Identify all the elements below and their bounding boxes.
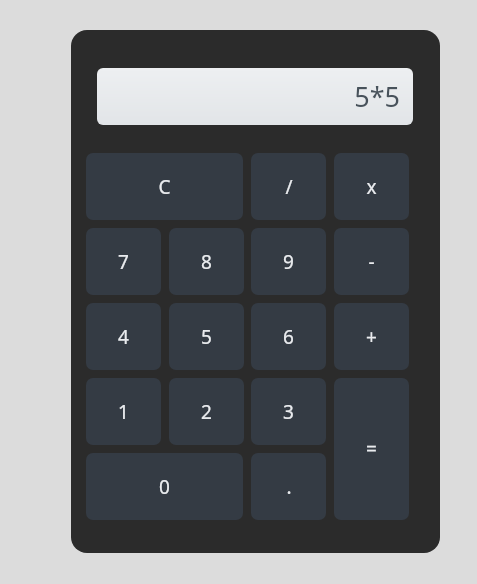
button[interactable]: 0 <box>86 453 243 520</box>
staticText: = <box>366 436 377 462</box>
staticText: / <box>285 174 293 200</box>
staticText: - <box>368 249 375 275</box>
staticText: 5*5 <box>354 78 400 115</box>
staticText: 2 <box>201 399 212 425</box>
button[interactable]: C <box>86 153 243 220</box>
staticText: x <box>366 174 377 200</box>
button[interactable]: + <box>334 303 409 370</box>
staticText: C <box>158 174 171 200</box>
button[interactable]: 6 <box>251 303 326 370</box>
staticText: 5 <box>201 324 212 350</box>
staticText: 0 <box>159 474 170 500</box>
button[interactable]: - <box>334 228 409 295</box>
staticText: 6 <box>283 324 294 350</box>
button[interactable]: 9 <box>251 228 326 295</box>
button[interactable]: 8 <box>169 228 244 295</box>
button[interactable]: Display <box>97 68 413 125</box>
button[interactable]: / <box>251 153 326 220</box>
button[interactable]: x <box>334 153 409 220</box>
button[interactable]: 1 <box>86 378 161 445</box>
button[interactable]: 2 <box>169 378 244 445</box>
staticText: 7 <box>118 249 129 275</box>
button[interactable]: 7 <box>86 228 161 295</box>
staticText: 4 <box>118 324 129 350</box>
staticText: . <box>286 474 292 500</box>
staticText: 9 <box>283 249 294 275</box>
button[interactable]: . <box>251 453 326 520</box>
button[interactable]: = <box>334 378 409 520</box>
staticText: 8 <box>201 249 212 275</box>
button[interactable]: 5 <box>169 303 244 370</box>
staticText: + <box>366 324 377 350</box>
staticText: 1 <box>118 399 129 425</box>
staticText: 3 <box>283 399 294 425</box>
button[interactable]: 3 <box>251 378 326 445</box>
button[interactable]: 4 <box>86 303 161 370</box>
